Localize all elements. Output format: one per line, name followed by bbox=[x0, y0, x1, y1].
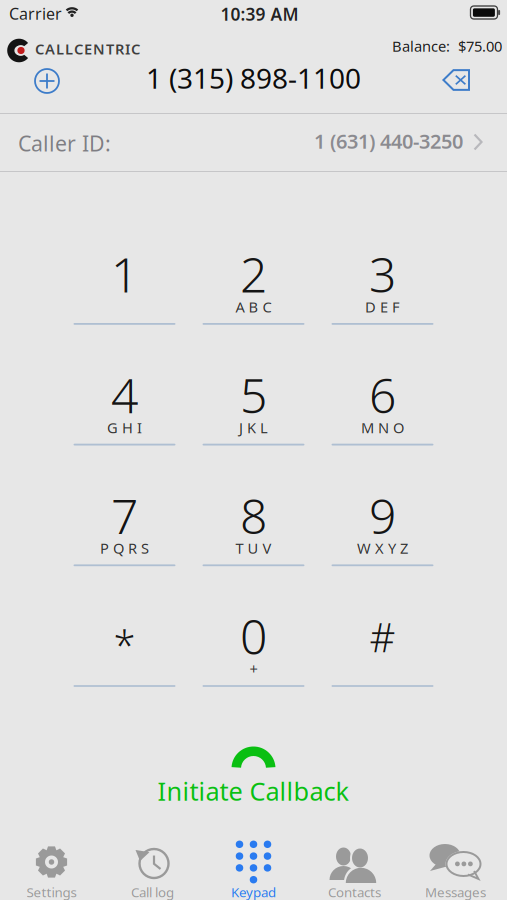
button[interactable]: 9 bbox=[318, 479, 447, 600]
staticText: W X Y Z bbox=[357, 538, 408, 558]
button[interactable]: 5 bbox=[189, 359, 318, 479]
button[interactable]: 4 bbox=[60, 359, 189, 479]
staticText: J K L bbox=[239, 418, 268, 437]
staticText: T U V bbox=[235, 538, 271, 558]
staticText: Settings bbox=[26, 883, 76, 900]
button[interactable]: * bbox=[60, 600, 189, 721]
staticText: 7 bbox=[111, 483, 138, 547]
staticText: * bbox=[113, 618, 135, 671]
staticText: Initiate Callback bbox=[157, 774, 349, 808]
staticText: 4 bbox=[111, 363, 138, 426]
button[interactable]: 7 bbox=[60, 479, 189, 600]
staticText: 0 bbox=[240, 604, 267, 668]
button[interactable]: 6 bbox=[318, 359, 447, 479]
staticText: 9 bbox=[369, 483, 396, 547]
staticText: 6 bbox=[369, 363, 396, 426]
staticText: Balance: $75.00 bbox=[392, 36, 502, 56]
staticText: Contacts bbox=[328, 883, 381, 900]
button[interactable]: Initiate Callback bbox=[103, 745, 403, 809]
staticText: 1 (315) 898-1100 bbox=[146, 59, 361, 97]
staticText: 1 bbox=[111, 242, 138, 306]
staticText: A B C bbox=[235, 297, 271, 316]
staticText: 5 bbox=[240, 363, 267, 426]
button[interactable]: Contacts bbox=[304, 832, 405, 900]
staticText: Keypad bbox=[231, 883, 276, 900]
staticText: 8 bbox=[240, 483, 267, 547]
staticText: M N O bbox=[361, 418, 404, 437]
staticText: P Q R S bbox=[100, 538, 149, 558]
button[interactable]: Keypad bbox=[203, 832, 304, 900]
staticText: Call log bbox=[131, 883, 174, 900]
staticText: C A L L C E N T R I C bbox=[35, 39, 140, 58]
button[interactable]: Messages bbox=[405, 832, 506, 900]
button[interactable]: 2 bbox=[189, 238, 318, 359]
button[interactable]: 1 bbox=[60, 238, 189, 359]
staticText: D E F bbox=[365, 297, 400, 316]
button[interactable]: Caller ID: bbox=[0, 114, 507, 171]
button[interactable]: 8 bbox=[189, 479, 318, 600]
button[interactable]: Delete bbox=[435, 58, 479, 102]
staticText: + bbox=[249, 659, 257, 679]
button[interactable]: Add number bbox=[25, 59, 69, 103]
staticText: 1 (631) 440-3250 bbox=[314, 128, 463, 154]
button[interactable]: 3 bbox=[318, 238, 447, 359]
staticText: 3 bbox=[369, 242, 396, 306]
staticText: 10:39 AM bbox=[220, 2, 298, 25]
staticText: G H I bbox=[107, 418, 142, 437]
staticText: Messages bbox=[425, 883, 486, 900]
button[interactable]: Call log bbox=[102, 832, 203, 900]
staticText: 2 bbox=[240, 242, 267, 306]
staticText: # bbox=[369, 610, 395, 663]
staticText: Caller ID: bbox=[18, 129, 111, 157]
staticText: Carrier bbox=[9, 3, 62, 24]
button[interactable]: Settings bbox=[1, 832, 102, 900]
button[interactable]: # bbox=[318, 600, 447, 721]
button[interactable]: 0 bbox=[189, 600, 318, 721]
